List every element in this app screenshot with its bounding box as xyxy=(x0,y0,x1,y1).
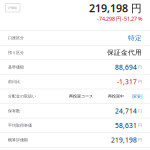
staticText: 前日比 xyxy=(8,79,20,84)
staticText: 58,631 xyxy=(115,121,137,130)
staticText: 評価額 xyxy=(8,6,17,9)
staticText: 保証金代用 xyxy=(107,48,142,57)
staticText: 保有数 xyxy=(8,108,20,113)
staticText: 再投資中 xyxy=(108,94,124,99)
staticText: 口座区分 xyxy=(8,36,24,40)
button[interactable]: [変更] xyxy=(124,94,142,99)
staticText: 分配金の取扱い xyxy=(8,94,36,99)
staticText: [変更] xyxy=(132,94,142,99)
staticText: 特定 xyxy=(128,34,142,42)
staticText: 基準価額 xyxy=(8,65,24,70)
staticText: 円 xyxy=(137,137,142,142)
staticText: 88,694 xyxy=(115,63,137,72)
staticText: 24,714 xyxy=(115,106,137,115)
staticText: 概算評価額 xyxy=(8,137,28,142)
staticText: -74,298 円 -51.27 % xyxy=(97,15,142,22)
staticText: -1,317 xyxy=(117,77,137,86)
staticText: 平均取得単価 xyxy=(8,123,32,128)
staticText: 円 xyxy=(137,123,142,128)
staticText: 219,198 円 xyxy=(89,1,142,15)
staticText: 口 xyxy=(137,108,142,113)
staticText: 円 xyxy=(137,65,142,70)
staticText: 預り区分 xyxy=(8,50,24,55)
staticText: 再投資コース xyxy=(69,94,93,99)
staticText: 219,198 xyxy=(111,135,137,144)
staticText: 円 xyxy=(137,79,142,84)
